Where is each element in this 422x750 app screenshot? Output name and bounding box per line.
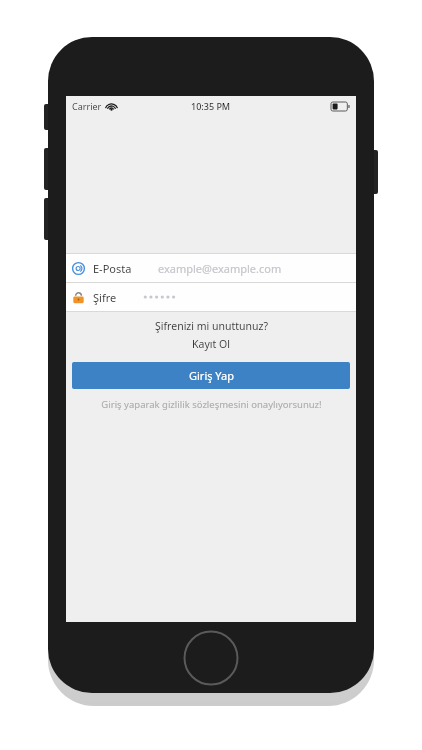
button[interactable]: Şifrenizi mi unuttunuz? [66, 318, 356, 334]
staticText: Giriş Yap [189, 368, 234, 383]
button[interactable]: Şifre [66, 283, 356, 311]
button[interactable]: E-Posta [66, 254, 356, 282]
staticText: E-Posta [93, 261, 132, 276]
staticText: example@example.com [158, 261, 282, 276]
staticText: Carrier [72, 100, 102, 112]
staticText: Şifre [93, 290, 117, 305]
button[interactable]: Kayıt Ol [66, 336, 356, 352]
other: Şifre [72, 291, 85, 304]
staticText: Kayıt Ol [192, 337, 230, 351]
staticText: Giriş yaparak gizlilik sözleşmesini onay… [101, 398, 322, 411]
other: E-Posta [72, 262, 85, 275]
button[interactable]: Giriş Yap [72, 362, 350, 389]
staticText: 10:35 PM [191, 100, 231, 112]
staticText: Şifrenizi mi unuttunuz? [155, 319, 268, 333]
